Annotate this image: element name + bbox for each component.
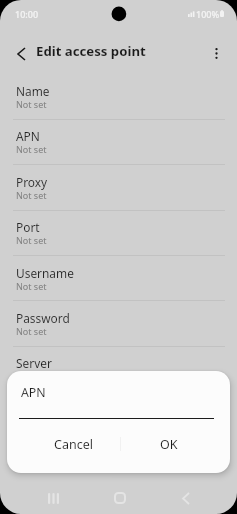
staticText: Not set	[16, 370, 47, 382]
staticText: Name	[16, 83, 50, 99]
button[interactable]: Home	[105, 483, 135, 513]
button[interactable]: Name	[0, 74, 237, 120]
button[interactable]: Navigate up	[8, 41, 34, 67]
button[interactable]: Back	[171, 483, 201, 513]
staticText: Username	[16, 265, 74, 281]
staticText: Not set	[16, 234, 47, 246]
staticText: APN	[21, 384, 46, 401]
staticText: Not set	[16, 189, 47, 201]
button[interactable]: Recent apps	[38, 483, 68, 513]
staticText: Proxy	[16, 174, 48, 190]
button[interactable]: Port	[0, 210, 237, 256]
staticText: Not set	[16, 280, 47, 292]
staticText: Server	[16, 355, 52, 371]
staticText: Cancel	[54, 436, 93, 453]
button[interactable]: Server	[0, 346, 237, 392]
staticText: Not set	[16, 325, 47, 337]
button[interactable]: Cancel	[26, 426, 120, 462]
button[interactable]: APN	[0, 119, 237, 165]
staticText: APN	[16, 128, 40, 144]
staticText: Edit access point	[36, 42, 146, 60]
button[interactable]: Password	[0, 301, 237, 347]
button[interactable]: Username	[0, 256, 237, 302]
button[interactable]: OK	[121, 426, 216, 462]
staticText: Port	[16, 219, 40, 235]
button[interactable]: Proxy	[0, 165, 237, 211]
button[interactable]: More options	[203, 40, 229, 66]
staticText: Password	[16, 310, 70, 326]
staticText: Not set	[16, 143, 47, 155]
staticText: OK	[160, 436, 178, 453]
staticText: 100%	[196, 8, 220, 20]
staticText: Not set	[16, 98, 47, 110]
staticText: 10:00	[15, 8, 39, 20]
